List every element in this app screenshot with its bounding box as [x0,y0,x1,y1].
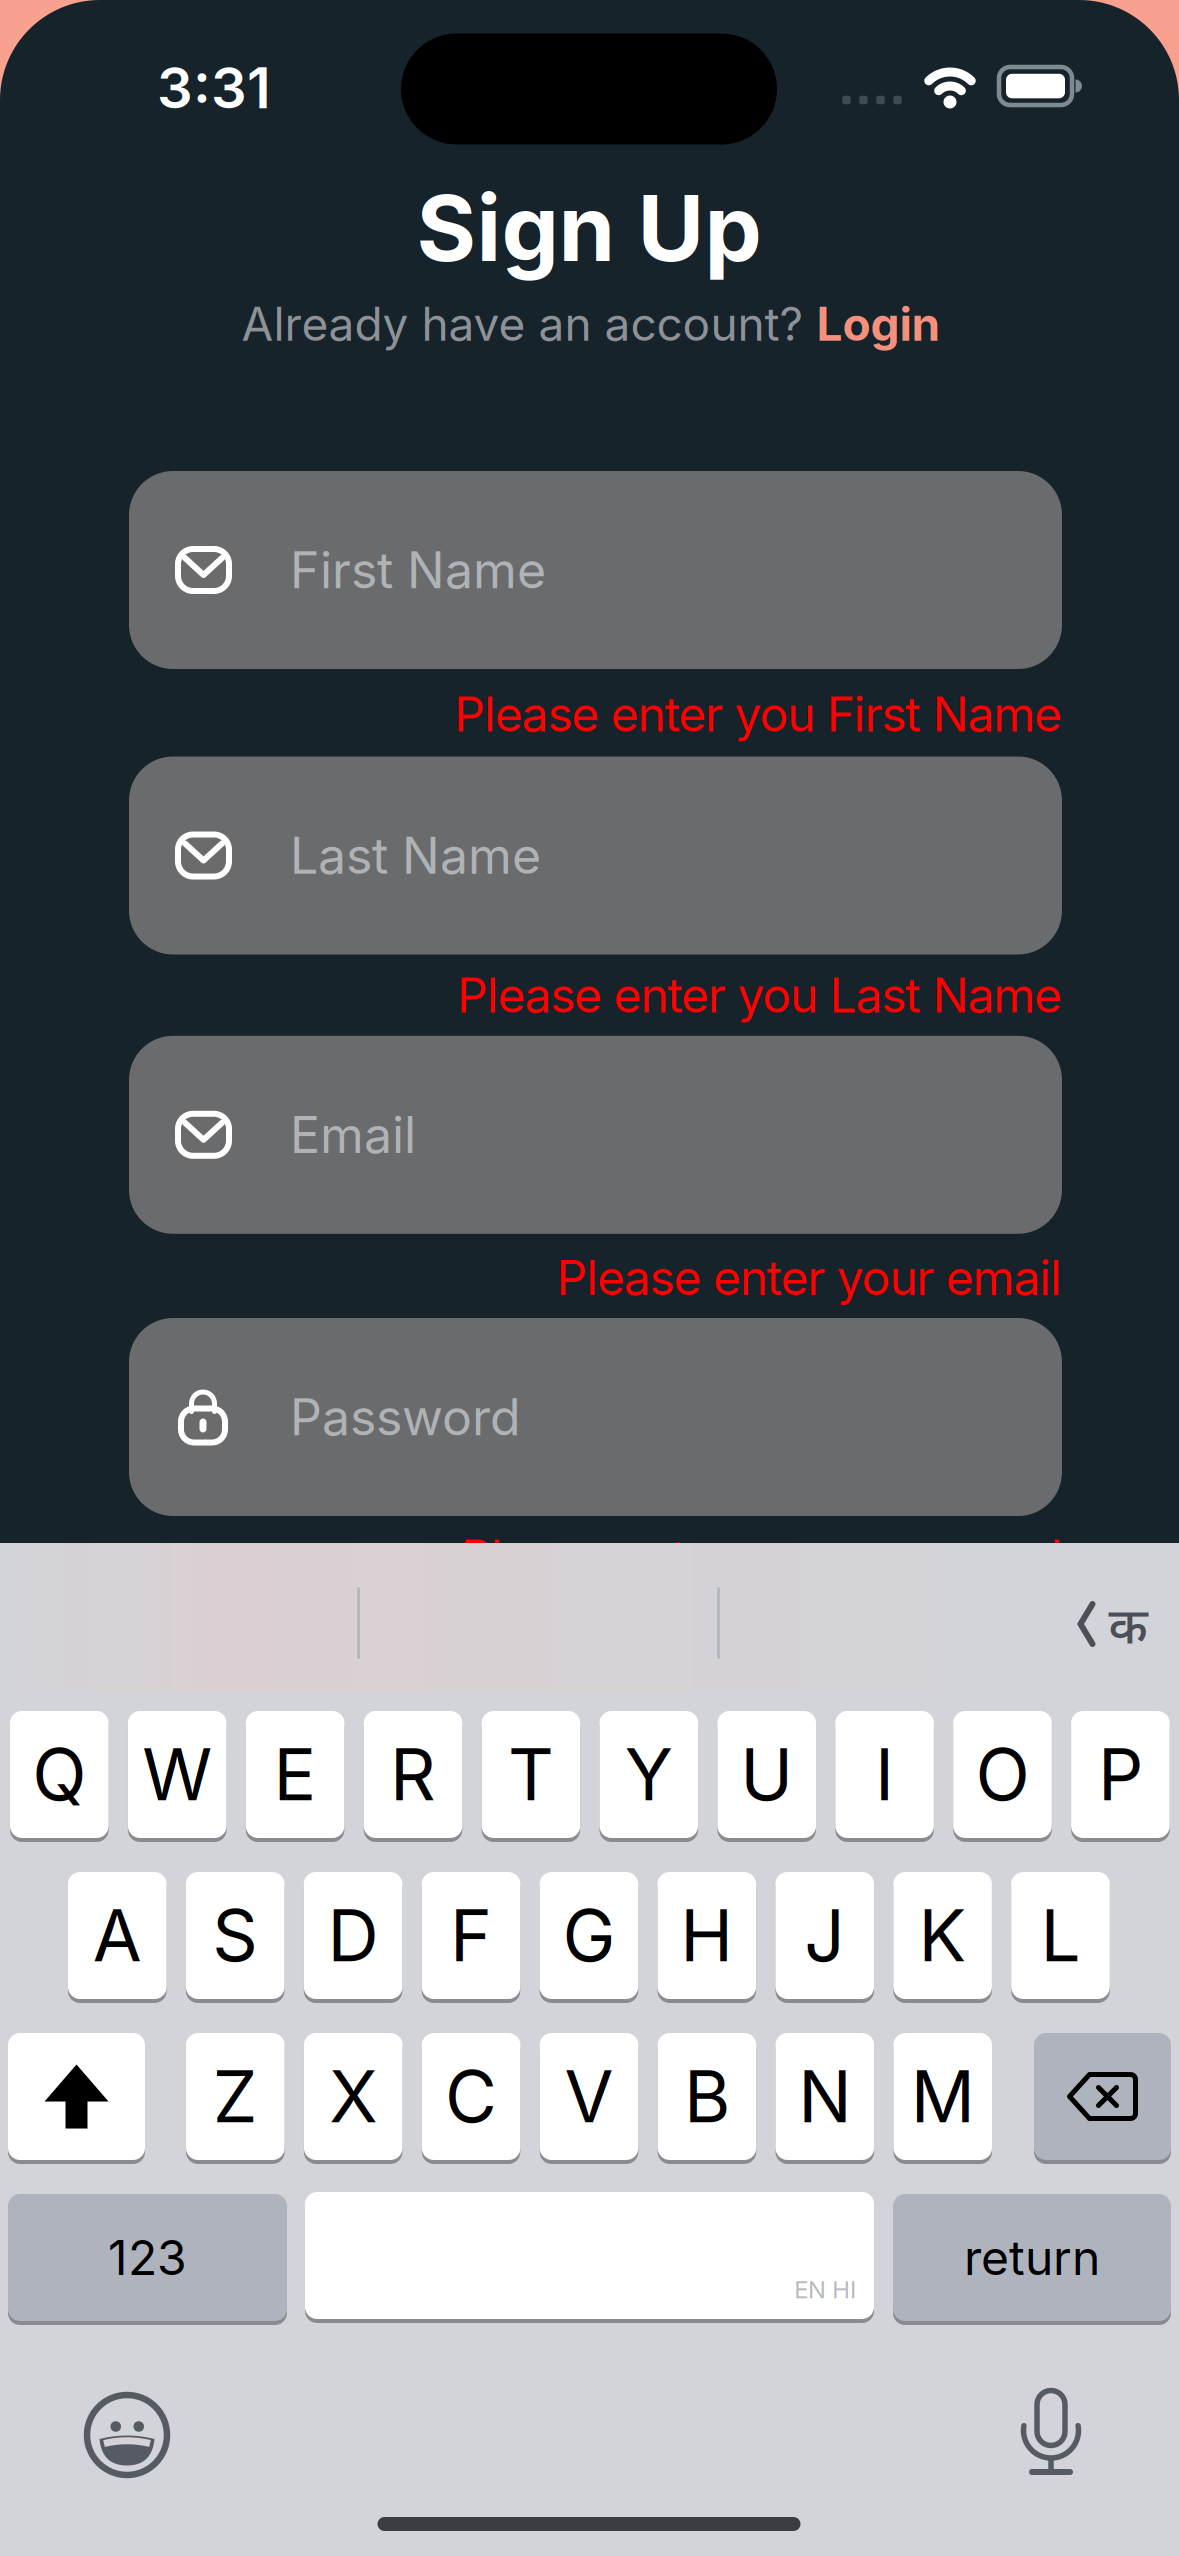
staticText: Please enter you Last Name [457,966,1062,1024]
button[interactable]: Login [804,292,944,352]
button[interactable]: R [364,1709,462,1840]
staticText: EN HI [794,2275,856,2304]
button[interactable]: U [717,1709,816,1840]
staticText: T [508,1731,554,1817]
staticText: F [450,1892,492,1978]
button[interactable]: E [246,1709,344,1840]
staticText: I [875,1731,894,1817]
button[interactable]: K [893,1870,992,2001]
button[interactable]: Emoji [87,2395,167,2475]
staticText: V [564,2053,613,2139]
button[interactable]: Space [305,2192,874,2323]
staticText: D [328,1892,379,1978]
staticText: U [740,1731,793,1817]
staticText: Q [32,1731,86,1817]
button[interactable]: Q [10,1709,109,1840]
button[interactable]: S [186,1870,284,2001]
staticText: Sign Up [416,173,761,283]
button[interactable]: Shift [8,2031,145,2162]
staticText: O [975,1731,1029,1817]
staticText: R [390,1731,436,1817]
button[interactable]: Devanagari keyboard [1078,1590,1147,1658]
staticText: Please enter your password [461,1528,1062,1586]
staticText: S [212,1892,258,1978]
button[interactable]: H [657,1870,756,2001]
staticText: E [274,1731,317,1817]
staticText: Please enter you First Name [454,685,1062,743]
button[interactable]: Last Name [129,756,1062,954]
staticText: K [919,1892,967,1978]
button[interactable]: L [1011,1870,1110,2001]
button[interactable]: return [893,2192,1171,2323]
staticText: क [1108,1590,1147,1658]
staticText: Password [290,1387,521,1447]
staticText: Please enter your email [556,1248,1062,1307]
staticText: X [329,2053,377,2139]
staticText: L [1040,1892,1080,1978]
button[interactable]: First Name [129,471,1062,669]
staticText: 3:31 [157,54,271,122]
button[interactable]: I [835,1709,934,1840]
button[interactable]: A [68,1870,167,2001]
staticText: C [445,2053,497,2139]
staticText: W [142,1731,212,1817]
staticText: Already have an account? [241,296,803,352]
button[interactable]: 123 [8,2192,287,2323]
staticText: Email [290,1105,416,1165]
button[interactable]: B [658,2031,756,2162]
button[interactable]: N [775,2031,874,2162]
button[interactable]: T [482,1709,580,1840]
staticText: Y [625,1731,673,1817]
staticText: J [804,1892,845,1978]
button[interactable]: Delete [1034,2031,1171,2162]
button[interactable]: D [304,1870,402,2001]
staticText: P [1098,1731,1143,1817]
button[interactable]: X [304,2031,402,2162]
button[interactable]: Y [599,1709,698,1840]
button[interactable]: Dictation [1023,2390,1079,2475]
staticText: H [680,1892,733,1978]
button[interactable]: Password [129,1318,1062,1516]
staticText: return [964,2228,1100,2287]
button[interactable]: O [953,1709,1052,1840]
staticText: M [911,2053,975,2139]
button[interactable]: Email [129,1036,1062,1234]
button[interactable]: M [893,2031,992,2162]
staticText: G [562,1892,615,1978]
staticText: 123 [108,2228,187,2287]
staticText: Login [816,296,940,352]
button[interactable]: P [1071,1709,1170,1840]
button[interactable]: C [422,2031,520,2162]
staticText: First Name [290,540,546,600]
staticText: Last Name [290,825,541,886]
staticText: B [684,2053,730,2139]
staticText: Z [213,2053,258,2139]
button[interactable]: Z [186,2031,285,2162]
staticText: N [798,2053,851,2139]
button[interactable]: J [775,1870,874,2001]
button[interactable]: G [540,1870,638,2001]
staticText: A [93,1892,142,1978]
button[interactable]: W [128,1709,226,1840]
button[interactable]: F [422,1870,520,2001]
button[interactable]: V [540,2031,638,2162]
